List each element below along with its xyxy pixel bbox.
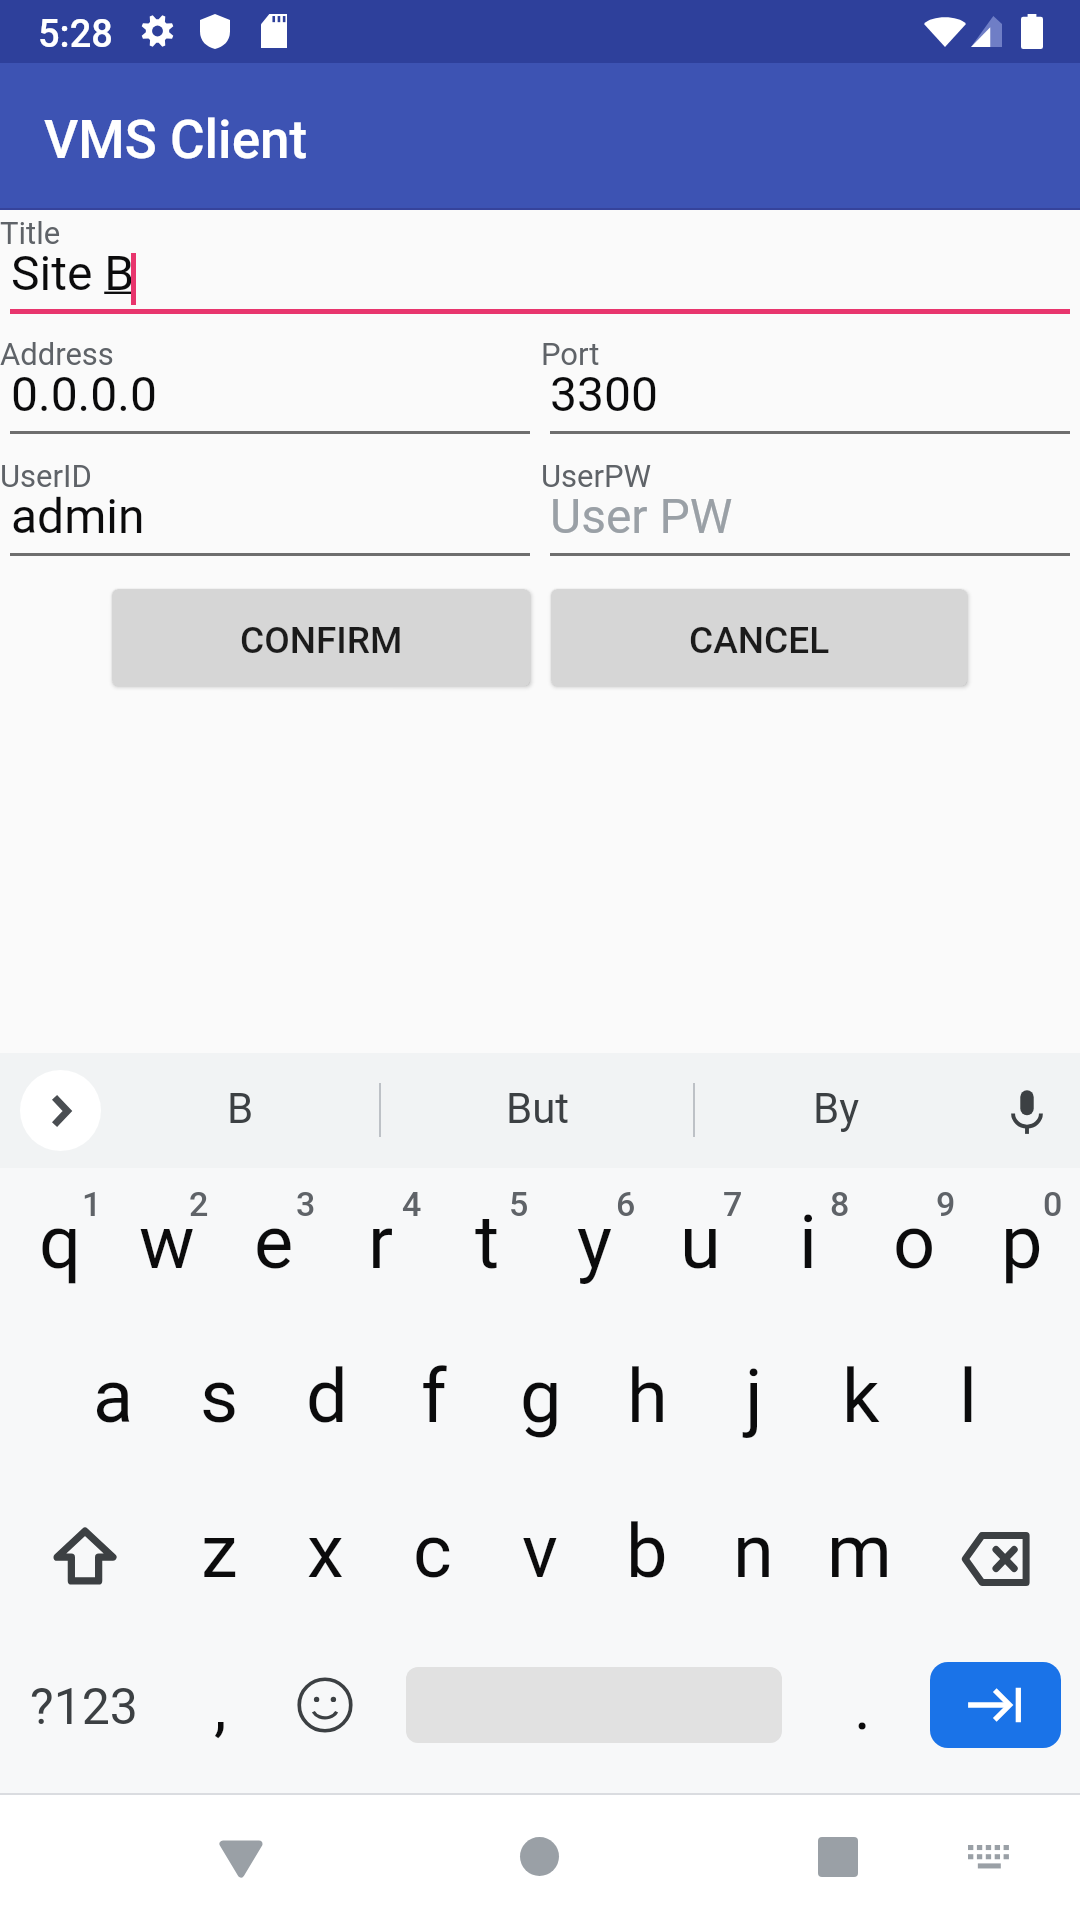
button[interactable]: Keyboard <box>918 1793 1058 1920</box>
staticText: 5:28 <box>38 12 113 57</box>
staticText: c <box>413 1508 452 1595</box>
staticText: ?123 <box>30 1678 138 1737</box>
button[interactable]: b <box>593 1480 700 1636</box>
staticText: d <box>306 1353 348 1440</box>
button[interactable]: z <box>166 1480 273 1636</box>
staticText: s <box>200 1353 239 1440</box>
staticText: t <box>475 1199 500 1286</box>
staticText: UserPW <box>541 458 652 494</box>
staticText: u <box>680 1199 721 1286</box>
staticText: f <box>421 1353 447 1440</box>
staticText: i <box>799 1199 817 1286</box>
staticText: 2 <box>189 1184 209 1224</box>
staticText: CANCEL <box>689 619 830 662</box>
button[interactable]: Shift <box>0 1480 166 1636</box>
staticText: 4 <box>402 1184 422 1224</box>
staticText: By <box>813 1084 860 1133</box>
button[interactable]: Voice input <box>999 1083 1055 1139</box>
staticText: Port <box>541 336 600 372</box>
staticText: b <box>626 1508 668 1595</box>
staticText: n <box>733 1508 774 1595</box>
button[interactable]: e <box>220 1168 327 1324</box>
button[interactable]: s <box>166 1324 273 1480</box>
button[interactable]: l <box>914 1324 1021 1480</box>
staticText: 3300 <box>550 366 658 422</box>
button[interactable] <box>378 1636 808 1792</box>
button[interactable]: Expand toolbar <box>20 1070 101 1151</box>
staticText: z <box>201 1508 238 1595</box>
button[interactable]: j <box>700 1324 807 1480</box>
staticText: Site B <box>11 245 135 301</box>
staticText: Title <box>0 215 61 251</box>
button[interactable]: ?123 <box>0 1636 168 1792</box>
button[interactable]: m <box>806 1480 913 1636</box>
staticText: h <box>627 1353 668 1440</box>
staticText: g <box>520 1353 562 1440</box>
staticText: k <box>842 1353 880 1440</box>
staticText: But <box>506 1084 570 1133</box>
button[interactable]: f <box>380 1324 487 1480</box>
staticText: VMS Client <box>44 109 308 171</box>
staticText: p <box>1001 1199 1043 1286</box>
staticText: B <box>227 1084 254 1133</box>
staticText: , <box>214 1670 227 1745</box>
staticText: 5 <box>509 1184 529 1224</box>
staticText: e <box>254 1199 294 1286</box>
staticText: v <box>522 1508 558 1595</box>
button[interactable]: p <box>968 1168 1075 1324</box>
staticText: 8 <box>830 1184 850 1224</box>
button[interactable]: i <box>754 1168 861 1324</box>
button[interactable]: CONFIRM <box>112 589 530 686</box>
staticText: j <box>745 1353 763 1440</box>
button[interactable]: r <box>327 1168 434 1324</box>
button[interactable]: Emoji <box>272 1636 378 1792</box>
button[interactable]: x <box>272 1480 379 1636</box>
staticText: 6 <box>616 1184 636 1224</box>
button[interactable]: Next <box>930 1662 1061 1748</box>
button[interactable]: CANCEL <box>551 589 967 686</box>
button[interactable]: d <box>273 1324 380 1480</box>
staticText: r <box>368 1199 394 1286</box>
button[interactable]: g <box>487 1324 594 1480</box>
button[interactable]: v <box>486 1480 593 1636</box>
staticText: w <box>139 1199 195 1286</box>
staticText: . <box>854 1670 871 1745</box>
staticText: User PW <box>550 488 733 544</box>
button[interactable]: Recents <box>768 1793 908 1920</box>
button[interactable]: , <box>168 1636 272 1792</box>
staticText: m <box>827 1508 892 1595</box>
staticText: 7 <box>723 1184 743 1224</box>
staticText: x <box>307 1508 344 1595</box>
staticText: admin <box>11 488 145 544</box>
button[interactable]: B <box>152 1053 328 1168</box>
staticText: UserID <box>0 458 92 494</box>
button[interactable]: o <box>861 1168 968 1324</box>
button[interactable]: By <box>748 1053 924 1168</box>
button[interactable]: Home <box>469 1793 609 1920</box>
button[interactable]: q <box>7 1168 114 1324</box>
button[interactable]: n <box>700 1480 807 1636</box>
button[interactable]: Back <box>171 1793 311 1920</box>
staticText: o <box>893 1199 936 1286</box>
staticText: y <box>577 1199 613 1286</box>
button[interactable]: t <box>434 1168 541 1324</box>
button[interactable]: k <box>807 1324 914 1480</box>
button[interactable]: Backspace <box>914 1480 1080 1636</box>
staticText: 0 <box>1043 1184 1063 1224</box>
button[interactable]: . <box>808 1636 912 1792</box>
staticText: a <box>93 1353 134 1440</box>
button[interactable]: w <box>113 1168 220 1324</box>
button[interactable]: h <box>594 1324 701 1480</box>
staticText: 1 <box>82 1184 102 1224</box>
button[interactable]: But <box>450 1053 626 1168</box>
button[interactable]: a <box>60 1324 167 1480</box>
button[interactable]: u <box>647 1168 754 1324</box>
button[interactable]: c <box>379 1480 486 1636</box>
staticText: 3 <box>296 1184 316 1224</box>
staticText: 0.0.0.0 <box>11 366 157 422</box>
button[interactable]: y <box>541 1168 648 1324</box>
staticText: CONFIRM <box>240 619 403 662</box>
staticText: Address <box>0 336 114 372</box>
staticText: q <box>39 1199 82 1286</box>
staticText: 9 <box>936 1184 956 1224</box>
